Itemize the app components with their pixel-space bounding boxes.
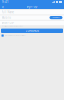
staticText: SEND OTP xyxy=(52,17,59,18)
button[interactable]: Back xyxy=(0,4,6,9)
button[interactable]: I agree to the Terms & Conditions xyxy=(0,34,64,37)
staticText: Enter OTP xyxy=(1,21,14,25)
staticText: 9:41 xyxy=(2,0,9,4)
button[interactable]: SEND OTP xyxy=(49,16,62,19)
staticText: CONTINUE xyxy=(25,29,38,32)
staticText: ‹ xyxy=(2,3,4,10)
staticText: Full Name xyxy=(1,10,14,14)
staticText: Mobile xyxy=(1,16,11,19)
staticText: OTP will be sent to this mobile number xyxy=(1,25,23,27)
staticText: Sign Up xyxy=(26,5,37,8)
staticText: I agree to the Terms & Conditions xyxy=(5,35,26,36)
button[interactable]: CONTINUE xyxy=(1,29,63,33)
